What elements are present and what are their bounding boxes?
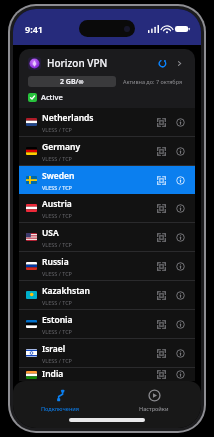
button[interactable]: Настройки [107,381,201,415]
button[interactable]: Refresh [154,55,170,71]
button[interactable]: Kazakhstan [19,281,195,310]
button[interactable]: Ping Israel [153,345,169,361]
staticText: 2 GB/∞ [60,77,85,87]
button[interactable]: Подключения [13,381,107,415]
staticText: Russia [42,256,69,268]
staticText: VLESS / TCP [42,299,72,306]
staticText: India [42,368,64,380]
button[interactable]: Ping Russia [153,258,169,274]
staticText: USA [42,227,59,239]
staticText: VLESS / TCP [42,212,72,219]
button[interactable]: Info Kazakhstan [172,287,188,303]
staticText: Austria [42,198,72,210]
staticText: VLESS / TCP [42,270,72,277]
staticText: VLESS / TCP [42,126,72,133]
button[interactable]: Details [172,56,186,70]
staticText: Active [41,92,63,102]
staticText: Israel [42,343,66,355]
button[interactable]: Ping Estonia [153,316,169,332]
staticText: Estonia [42,314,73,326]
button[interactable]: Ping USA [153,229,169,245]
button[interactable]: Ping Germany [153,143,169,159]
button[interactable]: India [19,368,195,381]
button[interactable]: Ping India [153,368,169,381]
staticText: 9:41 [25,23,43,35]
staticText: Подключения [41,405,80,412]
staticText: Настройки [139,405,169,412]
staticText: VLESS / TCP [42,328,72,335]
button[interactable]: Ping Kazakhstan [153,287,169,303]
button[interactable]: Info Russia [172,258,188,274]
staticText: Sweden [42,170,75,182]
button[interactable]: Ping Sweden [153,172,169,188]
button[interactable]: Info India [172,368,188,381]
button[interactable]: Horizon VPN [19,49,195,108]
staticText: VLESS / TCP [42,184,72,191]
button[interactable]: Germany [19,137,195,166]
button[interactable]: Info Germany [172,143,188,159]
staticText: Germany [42,141,81,153]
button[interactable]: Ping Austria [153,200,169,216]
button[interactable]: Sweden [19,166,195,194]
staticText: Kazakhstan [42,285,91,297]
button[interactable]: Estonia [19,310,195,339]
staticText: Активна до: 7 октября 2094 19:39 [123,78,186,85]
button[interactable]: Ping Netherlands [153,114,169,130]
staticText: VLESS / TCP [42,241,72,248]
button[interactable]: Russia [19,252,195,281]
button[interactable]: Austria [19,194,195,223]
button[interactable]: Info USA [172,229,188,245]
staticText: Netherlands [42,112,94,124]
button[interactable]: Info Israel [172,345,188,361]
button[interactable]: Info Austria [172,200,188,216]
button[interactable]: Israel [19,339,195,368]
button[interactable]: Netherlands [19,108,195,137]
button[interactable]: Info Estonia [172,316,188,332]
button[interactable]: Info Sweden [172,172,188,188]
staticText: Horizon VPN [47,56,108,70]
button[interactable]: USA [19,223,195,252]
button[interactable]: Info Netherlands [172,114,188,130]
staticText: VLESS / TCP [42,155,72,162]
staticText: VLESS / TCP [42,357,72,364]
